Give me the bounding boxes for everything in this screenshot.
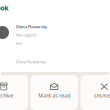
staticText: (No subject) [16, 32, 36, 38]
staticText: test [16, 41, 22, 46]
button[interactable]: Archive [0, 75, 28, 110]
button[interactable]: Mark as read [30, 75, 78, 110]
staticText: Outlook [0, 3, 8, 12]
button[interactable]: Dismiss [80, 75, 110, 110]
button[interactable]: Outlook [0, 3, 10, 12]
staticText: Diana Pivovarsky [16, 59, 46, 64]
staticText: Dismiss [94, 92, 110, 99]
staticText: Mark as read [38, 92, 70, 99]
staticText: Diana Pivovarsky [16, 24, 47, 29]
staticText: Archive [0, 92, 13, 99]
